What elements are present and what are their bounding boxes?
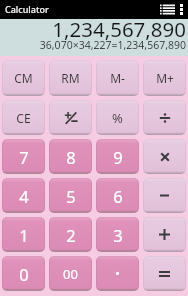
button[interactable] [143, 256, 186, 291]
button[interactable]: 5 [49, 178, 92, 213]
staticText: RM [61, 70, 80, 86]
button[interactable]: 3 [96, 217, 139, 252]
button[interactable]: 4 [2, 178, 45, 213]
button[interactable] [143, 139, 186, 174]
staticText: 9 [113, 146, 123, 168]
staticText: M+ [156, 70, 174, 86]
staticText: 1,234,567,890 [52, 15, 186, 43]
staticText: CE [16, 110, 31, 126]
button[interactable]: 0 [2, 256, 45, 291]
staticText: M- [110, 70, 125, 86]
staticText: 7 [19, 146, 29, 168]
button[interactable]: 2 [49, 217, 92, 252]
button[interactable] [143, 217, 186, 252]
button[interactable]: M+ [143, 60, 186, 96]
staticText: 4 [19, 185, 29, 207]
button[interactable]: History [159, 1, 176, 18]
button[interactable]: 6 [96, 178, 139, 213]
staticText: 2 [66, 224, 76, 246]
staticText: % [112, 109, 123, 127]
button[interactable]: RM [49, 60, 92, 96]
button[interactable] [143, 178, 186, 213]
button[interactable] [96, 256, 139, 291]
staticText: CM [14, 70, 33, 86]
button[interactable]: CM [2, 60, 45, 96]
button[interactable]: 00 [49, 256, 92, 291]
staticText: 1 [19, 224, 29, 246]
staticText: 5 [66, 185, 76, 207]
staticText: 0 [19, 263, 29, 285]
staticText: 36,070×34,227=1,234,567,890 [39, 38, 186, 52]
button[interactable] [49, 100, 92, 135]
button[interactable]: % [96, 100, 139, 135]
staticText: 6 [113, 185, 123, 207]
button[interactable]: CE [2, 100, 45, 135]
button[interactable]: 7 [2, 139, 45, 174]
staticText: 00 [63, 265, 78, 283]
button[interactable]: 8 [49, 139, 92, 174]
staticText: Calculator [5, 3, 49, 15]
button[interactable]: 1 [2, 217, 45, 252]
button[interactable] [143, 100, 186, 135]
button[interactable]: 9 [96, 139, 139, 174]
button[interactable]: More options [177, 1, 186, 18]
button[interactable]: M- [96, 60, 139, 96]
staticText: 3 [113, 224, 123, 246]
staticText: 8 [66, 146, 76, 168]
